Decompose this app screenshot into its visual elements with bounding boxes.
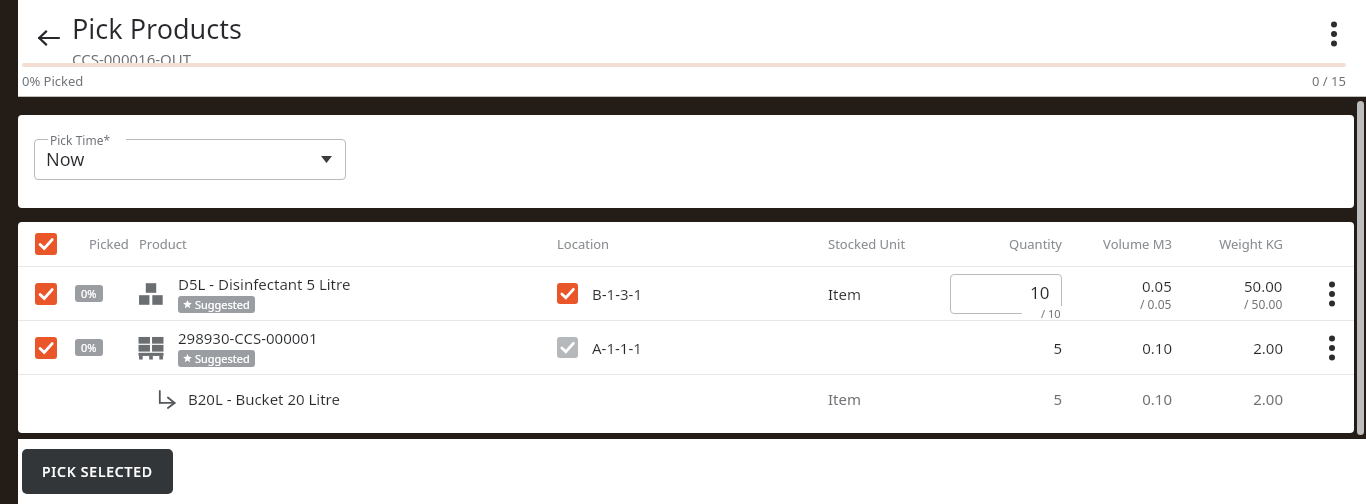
staticText: 0% — [81, 340, 97, 355]
button[interactable]: Pick Time* — [34, 139, 346, 180]
staticText: Suggested — [195, 351, 250, 366]
staticText: 5 — [942, 338, 1062, 358]
staticText: Pick Time* — [50, 132, 111, 148]
button[interactable]: Row options — [1312, 274, 1352, 314]
button[interactable]: 0% — [18, 321, 1354, 374]
staticText: 2.00 — [1163, 338, 1283, 358]
button[interactable]: Back — [24, 14, 72, 62]
button[interactable]: B20L - Bucket 20 Litre — [18, 375, 1354, 423]
staticText: 0 / 15 — [1312, 72, 1346, 90]
staticText: 0.10 — [1052, 338, 1172, 358]
staticText: 10 — [1030, 281, 1050, 304]
staticText: Product — [139, 235, 187, 253]
staticText: Quantity — [942, 235, 1062, 253]
staticText: Picked — [89, 235, 129, 253]
button[interactable]: Row options — [1312, 328, 1352, 368]
staticText: Stocked Unit — [828, 235, 906, 253]
staticText: D5L - Disinfectant 5 Litre — [178, 274, 351, 294]
button[interactable] — [35, 233, 57, 255]
staticText: Item — [828, 389, 861, 409]
staticText: Now — [46, 147, 85, 172]
staticText: 0% Picked — [22, 72, 84, 90]
staticText: B-1-3-1 — [592, 284, 642, 304]
button[interactable]: PICK SELECTED — [22, 449, 173, 494]
staticText: Pick Products — [72, 10, 242, 47]
staticText: 298930-CCS-000001 — [178, 328, 318, 348]
staticText: Volume M3 — [1052, 235, 1172, 253]
button[interactable]: More options — [1314, 14, 1354, 54]
staticText: Weight KG — [1163, 235, 1283, 253]
staticText: PICK SELECTED — [42, 462, 153, 481]
staticText: B20L - Bucket 20 Litre — [188, 389, 340, 409]
staticText: A-1-1-1 — [592, 338, 642, 358]
staticText: 50.00 — [1244, 276, 1283, 296]
staticText: / 50.00 — [1244, 296, 1283, 312]
staticText: CCS-000016-OUT — [72, 49, 192, 69]
button[interactable]: 0% — [18, 267, 1354, 320]
staticText: 2.00 — [1163, 389, 1283, 409]
staticText: Location — [557, 235, 610, 253]
staticText: Suggested — [195, 297, 250, 312]
staticText: 5 — [942, 389, 1062, 409]
staticText: / 0.05 — [1140, 296, 1172, 312]
button[interactable]: 10 — [950, 274, 1062, 314]
staticText: 0.05 — [1142, 276, 1172, 296]
staticText: Item — [828, 284, 861, 304]
staticText: 0% — [81, 286, 97, 301]
staticText: / 10 — [1041, 306, 1061, 321]
staticText: 0.10 — [1052, 389, 1172, 409]
